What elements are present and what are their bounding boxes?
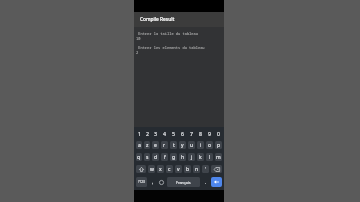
staticText: 6	[181, 130, 184, 137]
staticText: ,	[152, 179, 154, 186]
staticText: '	[205, 166, 207, 173]
staticText: p	[217, 142, 221, 149]
staticText: l	[209, 154, 211, 161]
button[interactable]: p	[215, 141, 222, 149]
staticText: 5	[172, 130, 175, 137]
button[interactable]: n	[193, 165, 200, 173]
staticText: 3	[154, 130, 157, 137]
button[interactable]: w	[148, 165, 155, 173]
button[interactable]	[136, 165, 146, 173]
staticText: Français	[176, 180, 191, 185]
staticText: 0	[217, 130, 220, 137]
staticText: d	[154, 154, 158, 161]
staticText: Entrer les elements du tableau	[136, 45, 205, 50]
staticText: f	[164, 154, 166, 161]
staticText: y	[181, 142, 184, 149]
button[interactable]	[211, 165, 222, 173]
staticText: m	[216, 154, 221, 161]
staticText: 1	[138, 130, 141, 137]
button[interactable]	[211, 177, 222, 187]
button[interactable]: b	[184, 165, 191, 173]
staticText: 2	[136, 50, 139, 55]
button[interactable]: c	[166, 165, 173, 173]
staticText: j	[191, 154, 193, 161]
button[interactable]: 8	[196, 127, 205, 139]
staticText: r	[163, 142, 166, 149]
button[interactable]: r	[161, 141, 168, 149]
button[interactable]: d	[152, 153, 159, 161]
button[interactable]: .	[201, 175, 210, 189]
staticText: ?123	[138, 180, 145, 184]
staticText: u	[190, 142, 194, 149]
button[interactable]: 4	[160, 127, 169, 139]
button[interactable]: s	[144, 153, 150, 161]
button[interactable]: l	[206, 153, 213, 161]
button[interactable]: z	[144, 141, 150, 149]
staticText: b	[186, 166, 190, 173]
staticText: n	[195, 166, 199, 173]
staticText: 10	[136, 36, 141, 41]
button[interactable]: 7	[187, 127, 196, 139]
staticText: 2	[146, 130, 149, 137]
staticText: i	[200, 142, 202, 149]
staticText: Entrer la taille du tableau	[136, 31, 198, 36]
button[interactable]: v	[175, 165, 182, 173]
button[interactable]: Compile Result	[134, 12, 224, 27]
staticText: 4	[163, 130, 166, 137]
button[interactable]: y	[179, 141, 186, 149]
button[interactable]: 2	[143, 127, 151, 139]
staticText: x	[159, 166, 162, 173]
staticText: w	[150, 166, 154, 173]
button[interactable]: a	[136, 141, 142, 149]
button[interactable]: q	[136, 153, 142, 161]
staticText: o	[208, 142, 212, 149]
staticText: g	[172, 154, 176, 161]
button[interactable]: t	[170, 141, 177, 149]
staticText: Compile Result	[140, 16, 175, 23]
button[interactable]: o	[206, 141, 213, 149]
button[interactable]: f	[161, 153, 168, 161]
button[interactable]: x	[157, 165, 164, 173]
staticText: z	[146, 142, 149, 149]
staticText: v	[177, 166, 180, 173]
staticText: .	[205, 179, 207, 186]
staticText: a	[138, 142, 141, 149]
button[interactable]: 1	[135, 127, 143, 139]
staticText: s	[146, 154, 149, 161]
button[interactable]: e	[152, 141, 159, 149]
button[interactable]: ,	[148, 175, 157, 189]
button[interactable]: j	[188, 153, 195, 161]
button[interactable]: 9	[205, 127, 214, 139]
staticText: e	[154, 142, 157, 149]
button[interactable]: '	[202, 165, 209, 173]
button[interactable]: 3	[151, 127, 160, 139]
staticText: q	[137, 154, 141, 161]
button[interactable]: h	[179, 153, 186, 161]
button[interactable]: Français	[167, 177, 200, 187]
staticText: h	[181, 154, 185, 161]
button[interactable]: k	[197, 153, 204, 161]
button[interactable]: g	[170, 153, 177, 161]
button[interactable]: m	[215, 153, 222, 161]
button[interactable]: 0	[214, 127, 223, 139]
button[interactable]: 6	[178, 127, 187, 139]
button[interactable]: ?123	[136, 177, 147, 187]
button[interactable]: i	[197, 141, 204, 149]
staticText: 8	[199, 130, 202, 137]
staticText: 7	[190, 130, 193, 137]
button[interactable]: u	[188, 141, 195, 149]
staticText: 9	[208, 130, 211, 137]
button[interactable]: 5	[169, 127, 178, 139]
button[interactable]	[157, 175, 166, 189]
staticText: c	[168, 166, 171, 173]
staticText: t	[173, 142, 175, 149]
staticText: k	[199, 154, 202, 161]
